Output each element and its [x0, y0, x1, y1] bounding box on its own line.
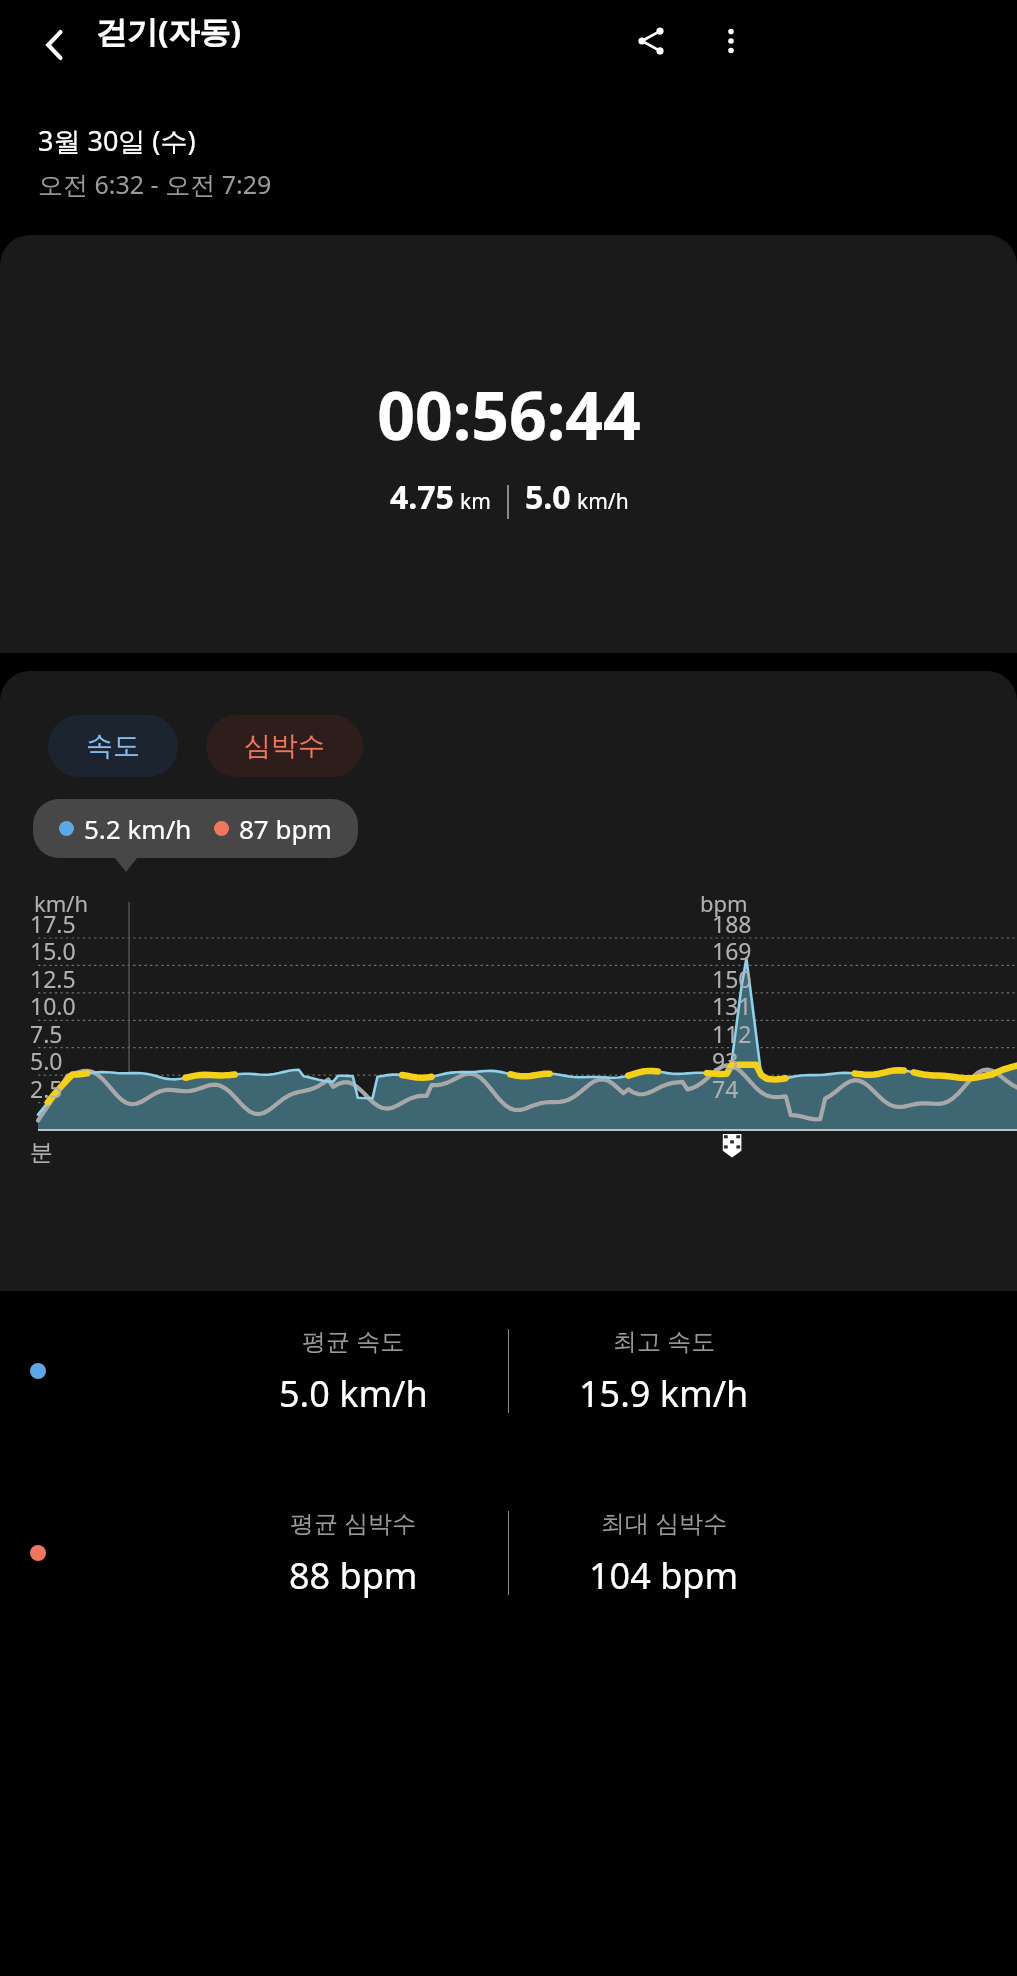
- button[interactable]: Finish marker: [718, 1134, 748, 1164]
- staticText: 평균 심박수: [290, 1506, 417, 1539]
- staticText: 심박수: [244, 729, 325, 763]
- button[interactable]: 속도: [48, 715, 178, 777]
- staticText: 5.0: [525, 475, 571, 519]
- button[interactable]: Back: [20, 10, 90, 80]
- staticText: km: [460, 487, 491, 516]
- staticText: 188: [712, 908, 752, 939]
- staticText: 걷기(자동): [96, 10, 242, 52]
- staticText: 15.0: [30, 935, 76, 966]
- staticText: 속도: [86, 729, 140, 763]
- staticText: 10.0: [30, 990, 76, 1021]
- staticText: 88 bpm: [289, 1551, 418, 1600]
- staticText: 104 bpm: [589, 1551, 739, 1600]
- staticText: 평균 속도: [302, 1324, 405, 1357]
- button[interactable]: 평균 심박수: [0, 1477, 1017, 1629]
- button[interactable]: 평균 속도: [0, 1295, 1017, 1447]
- staticText: 5.2 km/h: [84, 811, 192, 846]
- staticText: 5.0: [30, 1045, 63, 1076]
- button[interactable]: Share: [620, 10, 682, 72]
- staticText: 12.5: [30, 963, 76, 994]
- staticText: 최고 속도: [613, 1324, 716, 1357]
- button[interactable]: 심박수: [206, 715, 363, 777]
- staticText: 7.5: [30, 1018, 63, 1049]
- button[interactable]: 00:56:44: [0, 235, 1017, 653]
- staticText: 150: [712, 963, 752, 994]
- staticText: km/h: [577, 487, 629, 516]
- staticText: 오전 6:32 - 오전 7:29: [38, 167, 272, 201]
- staticText: 분: [30, 1138, 53, 1167]
- staticText: 15.9 km/h: [579, 1369, 749, 1418]
- staticText: 112: [712, 1018, 752, 1049]
- staticText: 3월 30일 (수): [38, 122, 196, 159]
- button[interactable]: 5.2 km/h: [33, 799, 358, 858]
- staticText: 87 bpm: [239, 811, 332, 846]
- staticText: bpm: [700, 888, 748, 918]
- staticText: 5.0 km/h: [279, 1369, 428, 1418]
- staticText: 131: [712, 990, 752, 1021]
- staticText: 최대 심박수: [601, 1506, 728, 1539]
- button[interactable]: More options: [700, 10, 762, 72]
- staticText: km/h: [34, 888, 89, 918]
- staticText: 169: [712, 935, 752, 966]
- staticText: 17.5: [30, 908, 76, 939]
- staticText: 4.75: [390, 475, 454, 519]
- staticText: 74: [712, 1073, 739, 1104]
- staticText: 2.5: [30, 1073, 63, 1104]
- staticText: 93: [712, 1045, 739, 1076]
- staticText: 00:56:44: [377, 369, 641, 459]
